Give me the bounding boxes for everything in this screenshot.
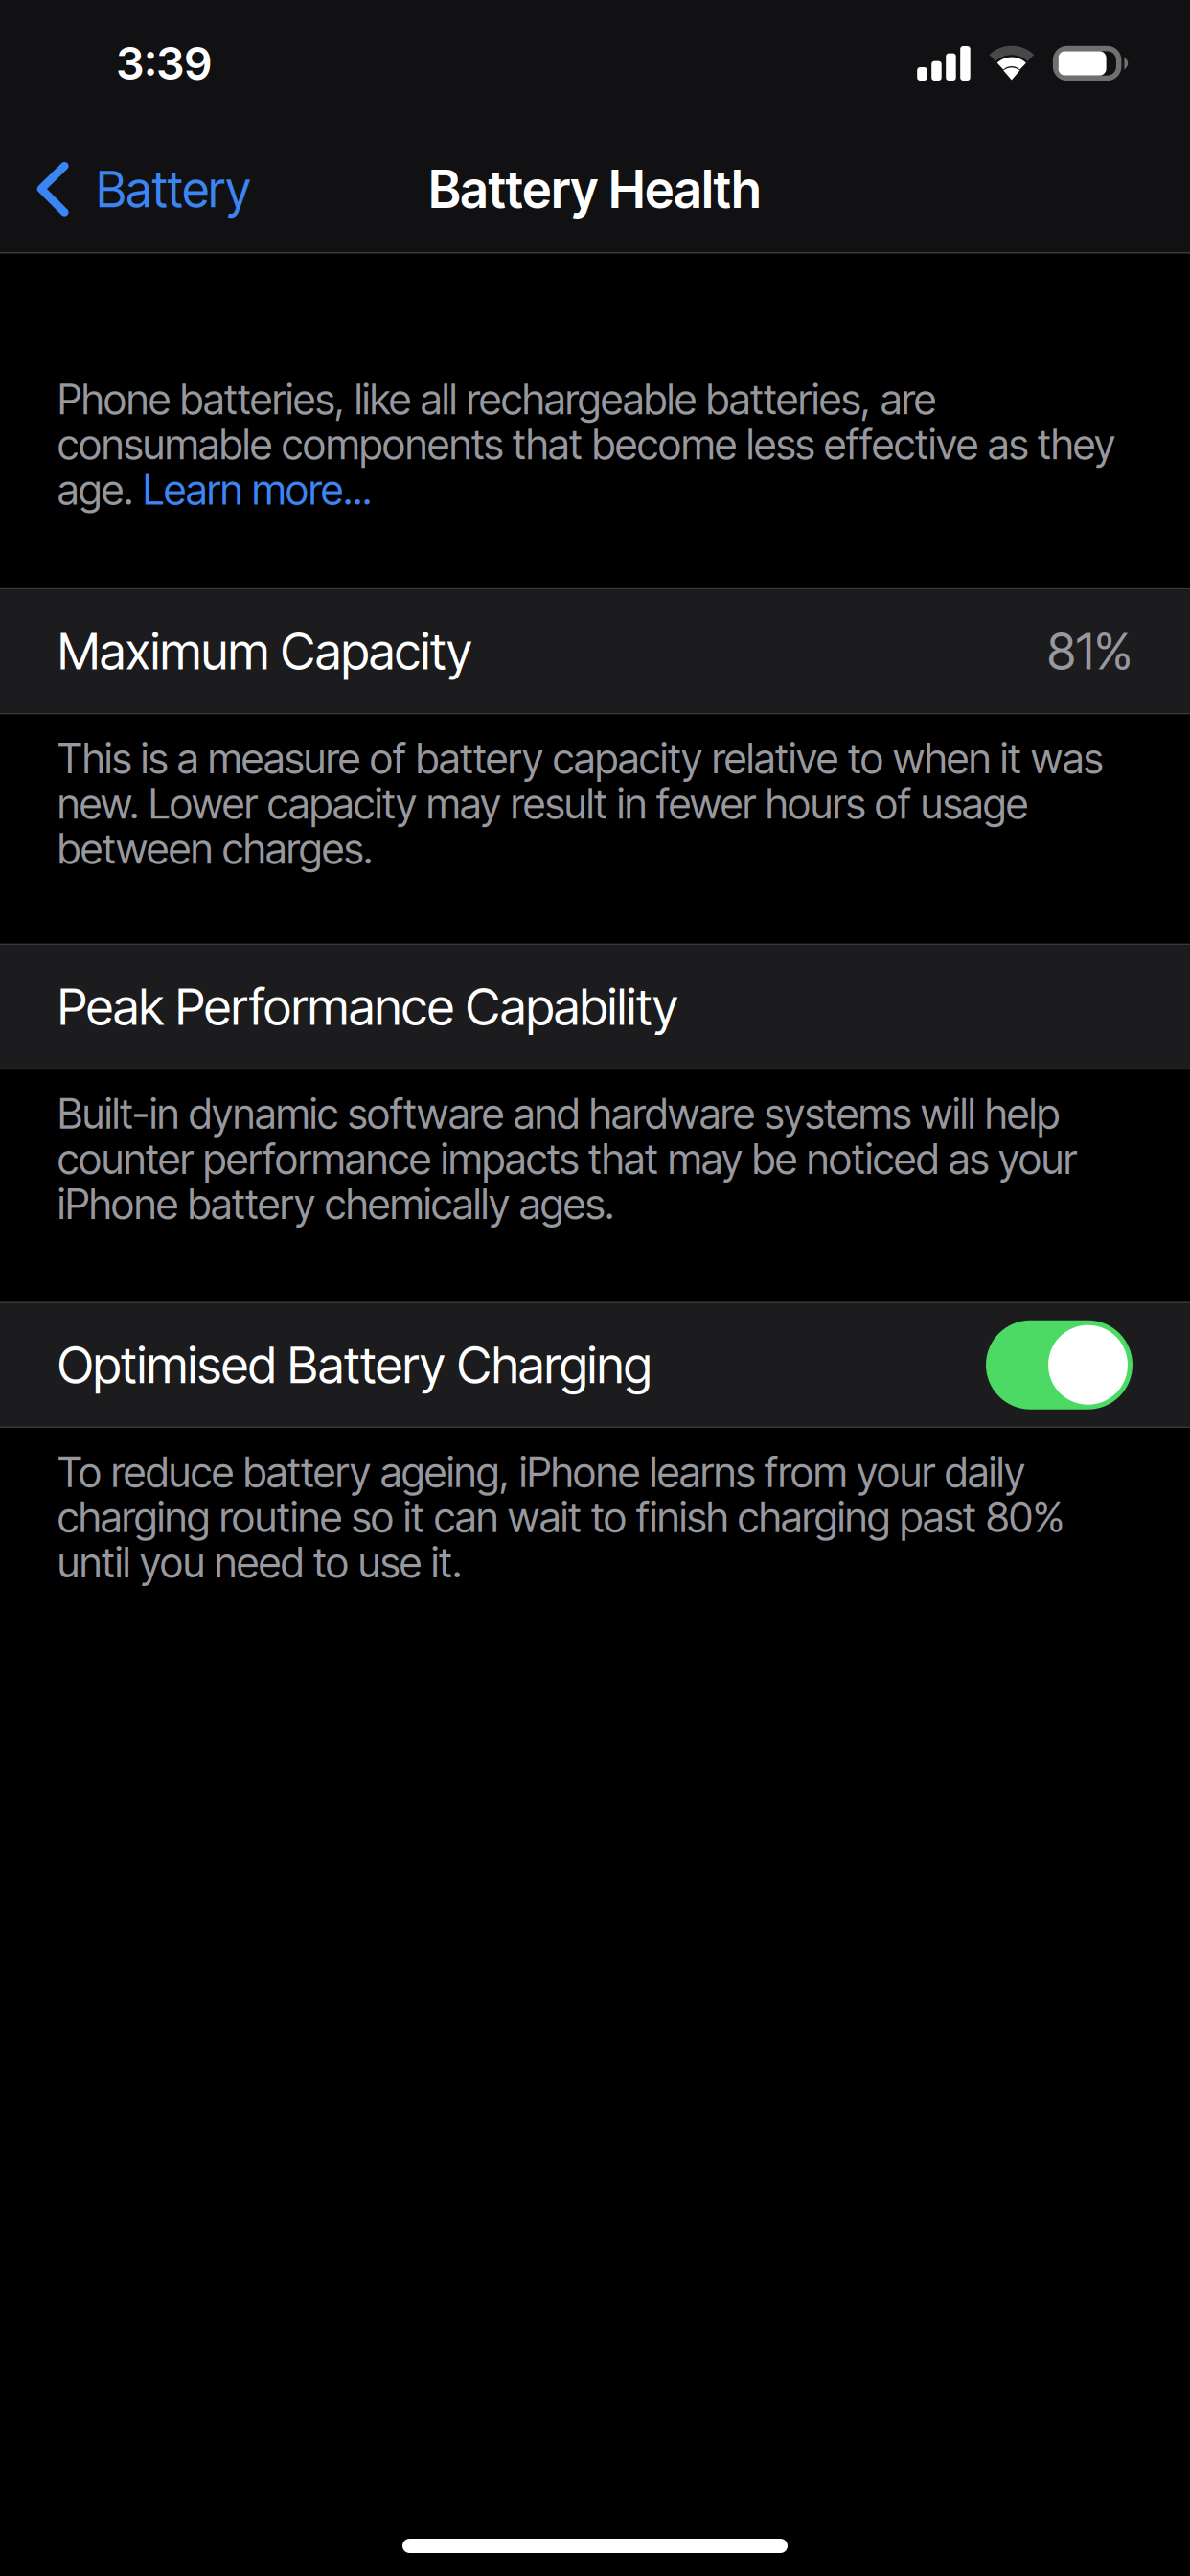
staticText: Peak Performance Capability — [57, 976, 678, 1037]
staticText: Built-in dynamic software and hardware s… — [57, 1089, 1077, 1229]
staticText: To reduce battery ageing, iPhone learns … — [57, 1447, 1064, 1587]
staticText: Optimised Battery Charging — [57, 1335, 652, 1395]
button[interactable]: Peak Performance Capability — [0, 945, 1190, 1068]
button[interactable]: Battery — [0, 126, 270, 252]
staticText: Battery — [96, 159, 250, 219]
staticText: This is a measure of battery capacity re… — [57, 733, 1103, 874]
staticText: 3:39 — [116, 36, 211, 90]
staticText: Phone batteries, like all rechargeable b… — [57, 374, 1115, 514]
staticText: Battery Health — [429, 158, 761, 220]
staticText: 81% — [1047, 621, 1133, 682]
button[interactable]: Optimised Battery Charging — [986, 1320, 1133, 1409]
staticText: Maximum Capacity — [57, 621, 472, 682]
